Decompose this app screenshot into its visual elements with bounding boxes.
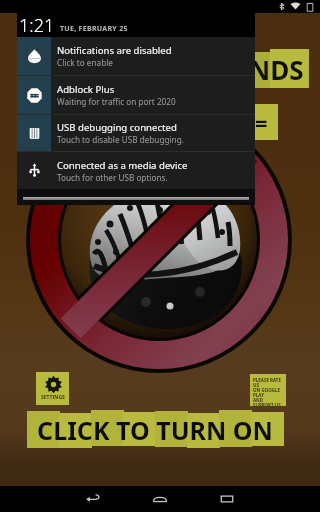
button[interactable]: Rate us on Google Play [250,374,286,406]
staticText: Adblock Plus [57,83,115,96]
staticText: Notifications are disabled [57,44,172,57]
staticText: NDS [249,52,304,87]
staticText: TUE, FEBRUARY 25 [60,24,128,34]
button[interactable]: Notifications are disabled [17,37,255,75]
staticText: CLICK TO TURN ON [37,413,273,447]
staticText: 1:21 [19,13,55,37]
staticText: Touch to disable USB debugging. [57,134,184,145]
button[interactable]: CLICK TO TURN ON [27,409,283,451]
button[interactable]: Connected as a media device [17,152,255,189]
button[interactable]: Settings [36,372,69,405]
button[interactable]: Home [152,486,168,512]
button[interactable]: Adblock Plus [17,76,255,114]
staticText: Click to enable [57,57,113,68]
button[interactable]: USB debugging connected [17,115,255,151]
staticText: Connected as a media device [57,159,188,172]
staticText: USB debugging connected [57,121,177,134]
staticText: SETTINGS [41,394,65,401]
staticText: PLEASE RATE US ON GOOGLE PLAY AND SUPPOR… [253,377,284,406]
button[interactable]: Recent apps [219,486,235,512]
button[interactable]: Back [85,486,101,512]
staticText: = [255,107,268,137]
staticText: Waiting for traffic on port 2020 [57,96,176,107]
button[interactable] [27,409,291,446]
button[interactable]: Close notification shade [17,189,255,205]
staticText: Touch for other USB options. [57,172,168,183]
